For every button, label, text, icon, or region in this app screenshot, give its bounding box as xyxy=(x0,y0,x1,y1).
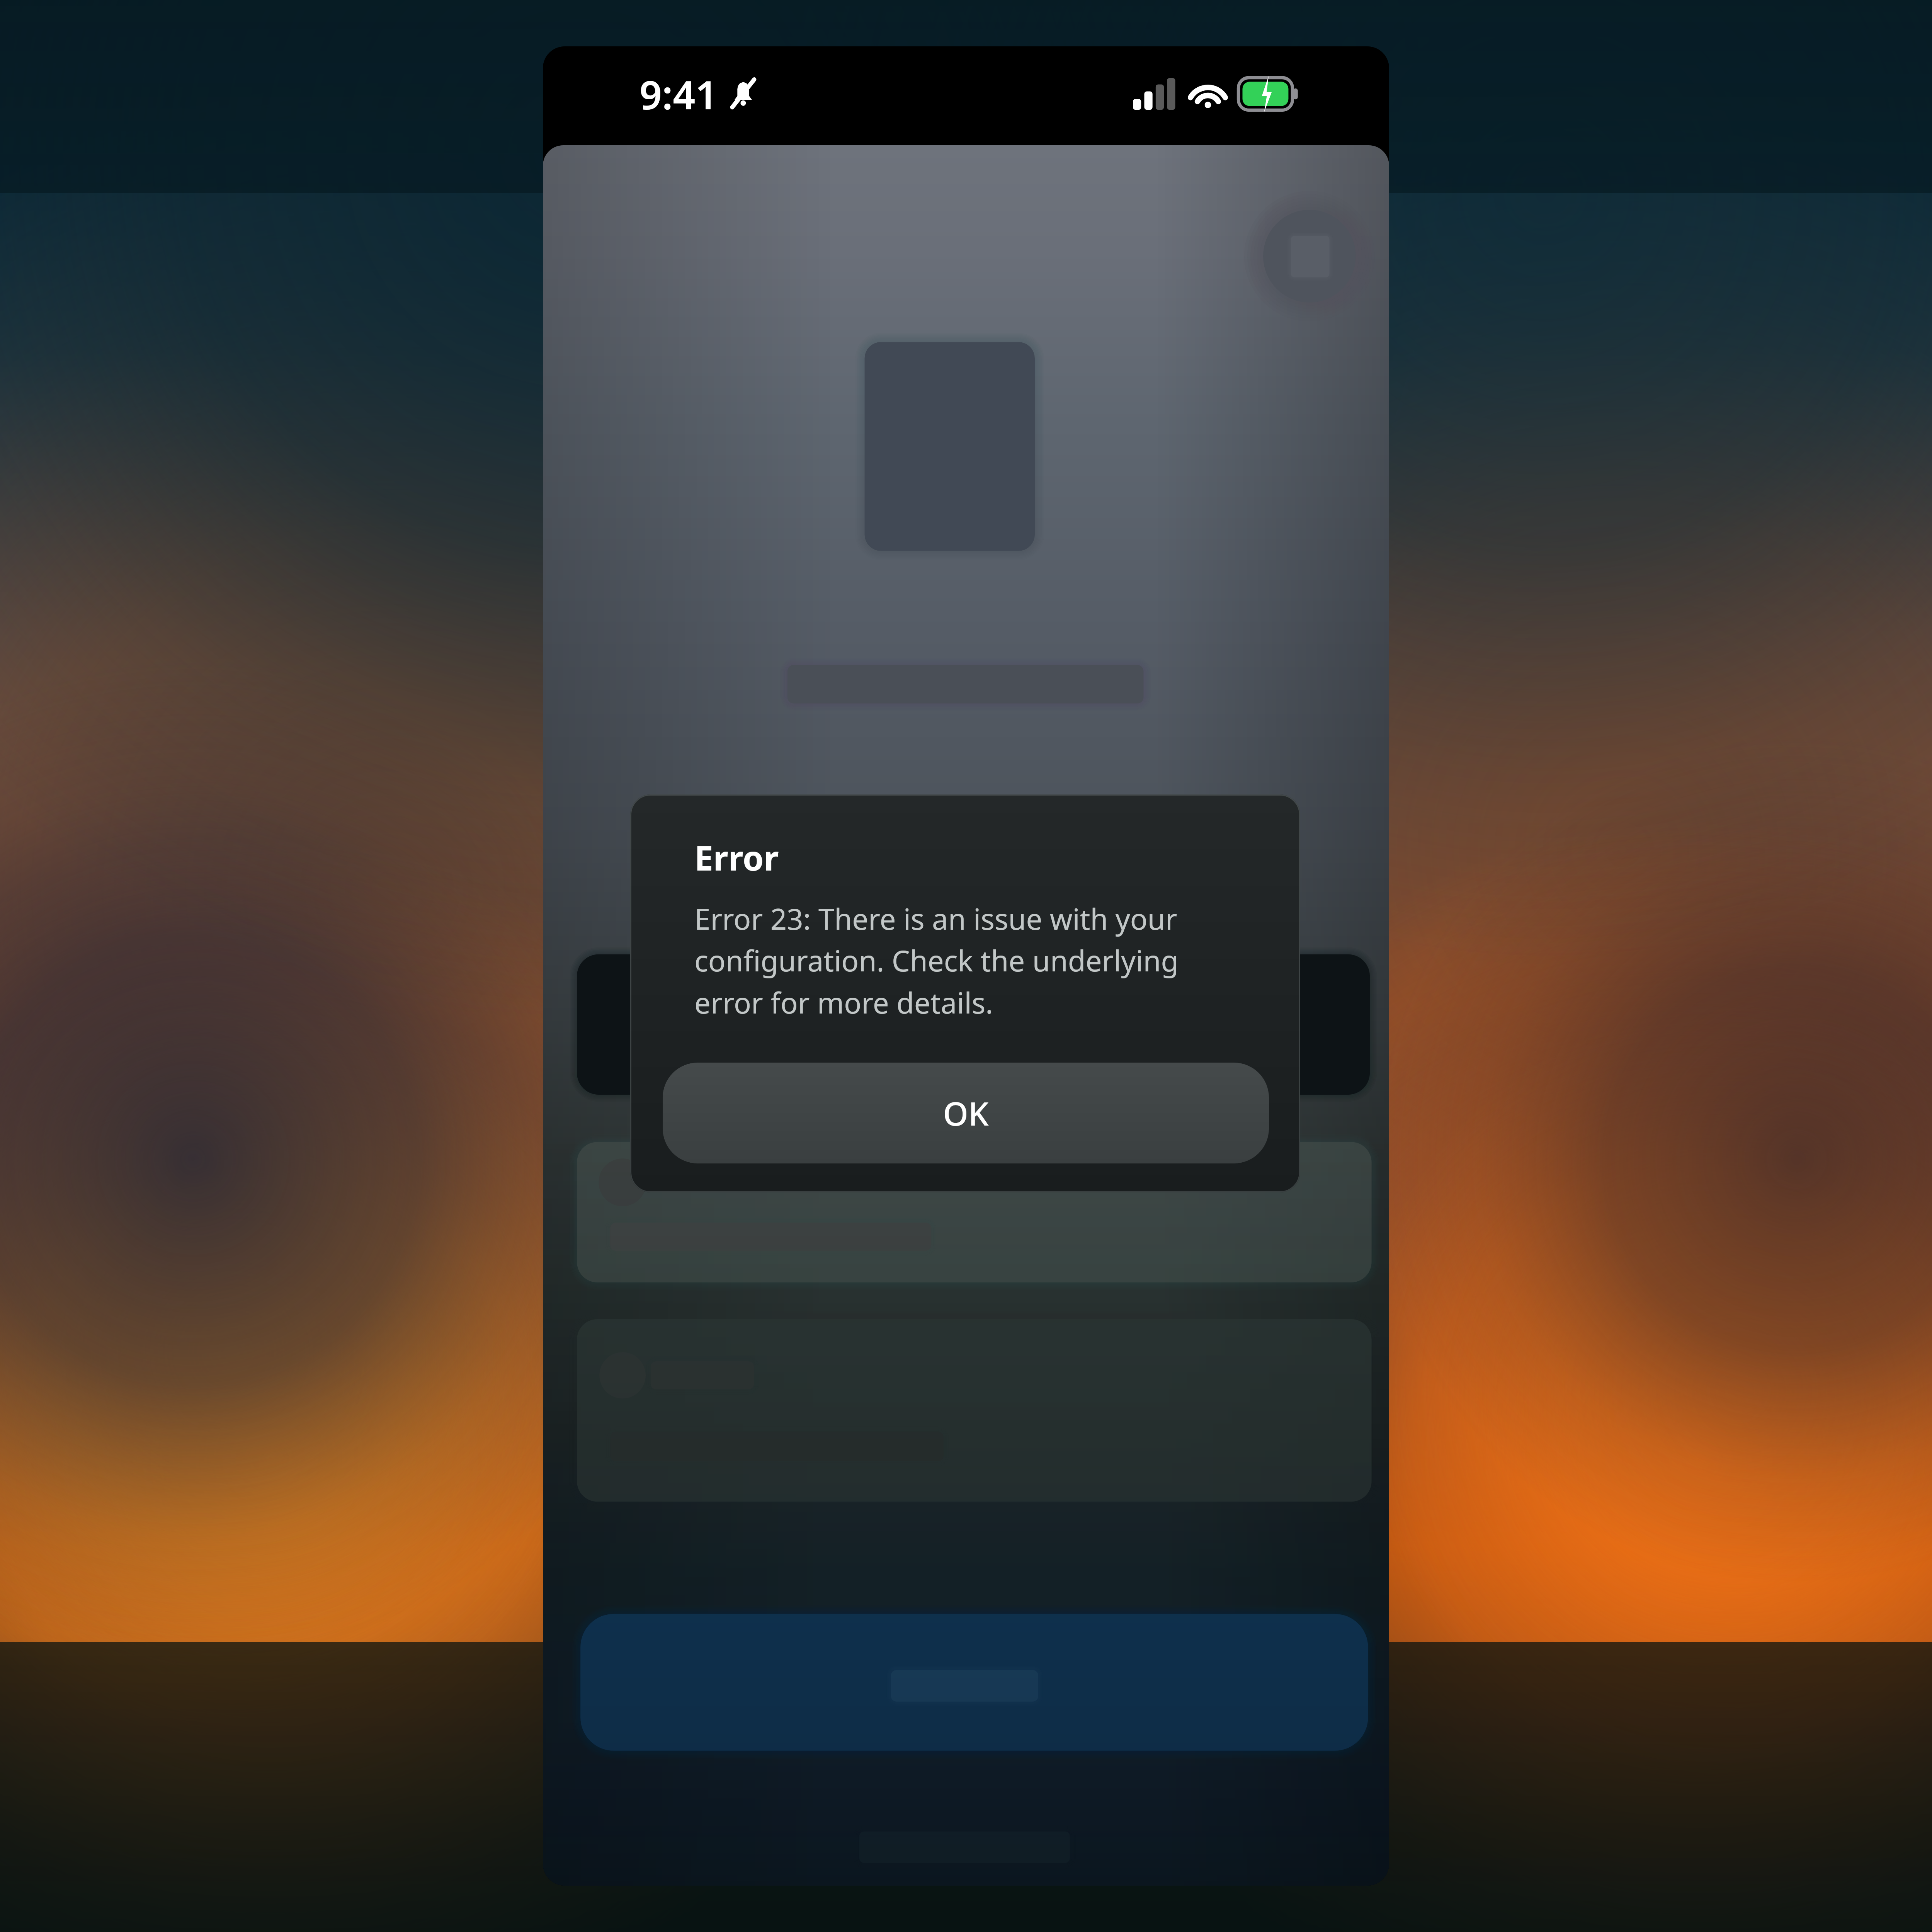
staticText: Error xyxy=(694,835,779,881)
button[interactable]: OK xyxy=(663,1063,1269,1163)
staticText: 9:41 xyxy=(639,67,718,121)
staticText: OK xyxy=(943,1091,989,1135)
staticText: Error 23: There is an issue with your co… xyxy=(694,899,1248,1022)
